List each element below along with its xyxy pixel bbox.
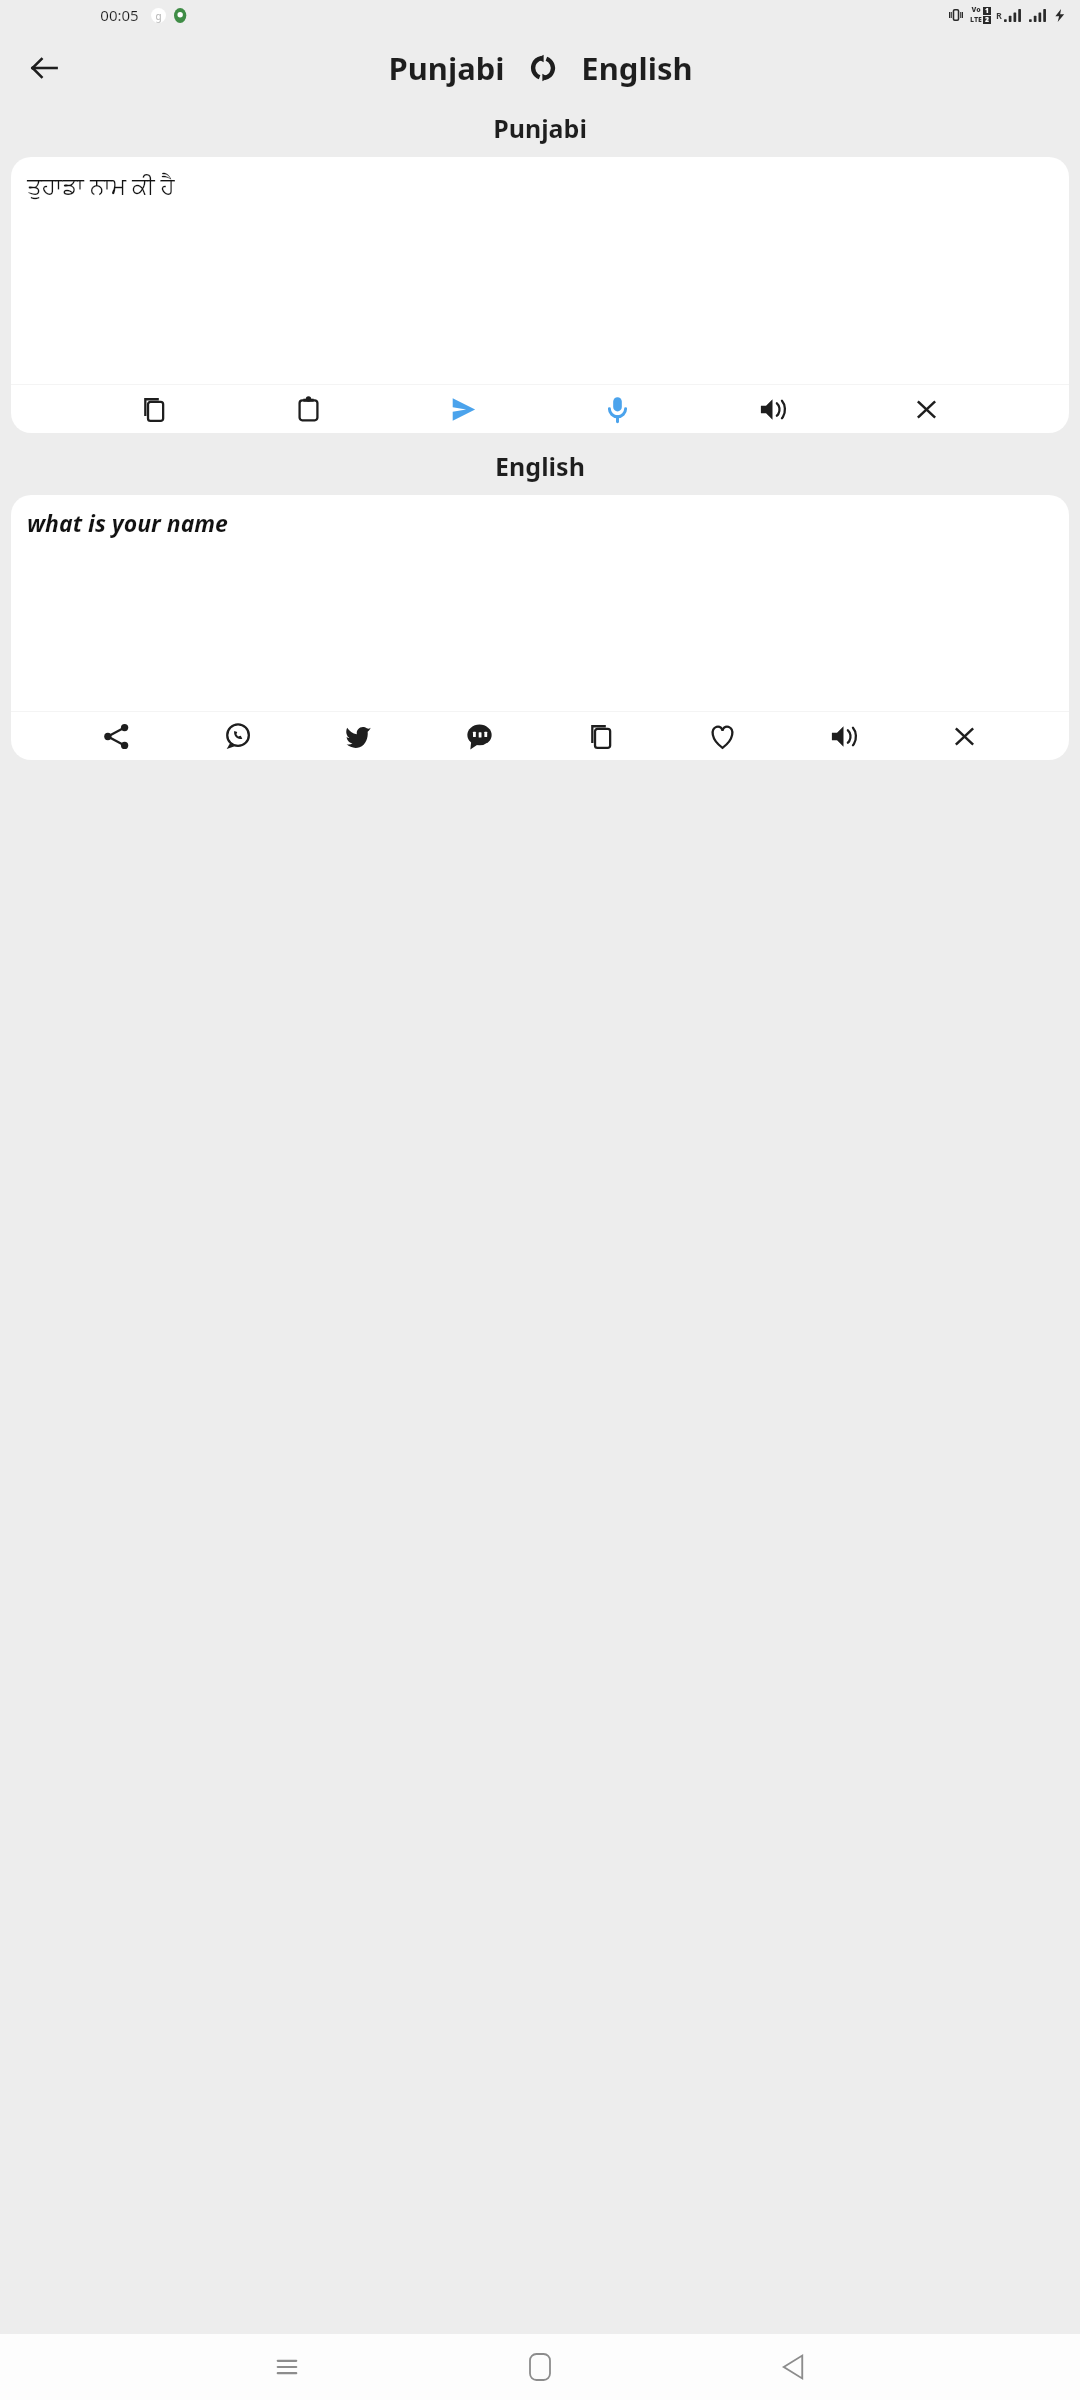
staticText: R: [996, 9, 1002, 21]
staticText: 2: [985, 16, 989, 24]
staticText: what is your name: [27, 507, 228, 538]
staticText: g: [155, 9, 162, 23]
button[interactable]: Clear: [904, 387, 948, 431]
button[interactable]: Punjabi: [384, 43, 509, 93]
button[interactable]: Back: [18, 42, 70, 94]
staticText: Punjabi: [493, 111, 587, 145]
staticText: 1: [985, 7, 989, 15]
staticText: English: [581, 47, 693, 89]
button[interactable]: WhatsApp: [215, 714, 259, 758]
button[interactable]: what is your name: [11, 495, 1069, 711]
staticText: 00:05: [100, 5, 139, 25]
button[interactable]: Back: [767, 2341, 819, 2393]
button[interactable]: Clear: [942, 714, 986, 758]
button[interactable]: Speak: [750, 387, 794, 431]
button[interactable]: Share: [94, 714, 138, 758]
button[interactable]: SMS: [457, 714, 501, 758]
button[interactable]: Translate: [441, 387, 485, 431]
button[interactable]: Voice input: [595, 387, 639, 431]
button[interactable]: Home: [514, 2341, 566, 2393]
staticText: Vo: [971, 5, 981, 15]
button[interactable]: Swap languages: [523, 48, 563, 88]
button[interactable]: ਤੁਹਾਡਾ ਨਾਮ ਕੀ ਹੈ: [11, 157, 1069, 384]
staticText: English: [495, 449, 585, 483]
button[interactable]: Copy: [132, 387, 176, 431]
button[interactable]: Copy: [579, 714, 623, 758]
button[interactable]: Speak: [821, 714, 865, 758]
button[interactable]: English: [577, 43, 697, 93]
staticText: ਤੁਹਾਡਾ ਨਾਮ ਕੀ ਹੈ: [27, 169, 175, 200]
button[interactable]: Recent apps: [261, 2341, 313, 2393]
button[interactable]: Favourite: [700, 714, 744, 758]
staticText: LTE: [970, 15, 982, 25]
button[interactable]: Paste: [286, 387, 330, 431]
button[interactable]: Twitter: [336, 714, 380, 758]
staticText: Punjabi: [388, 47, 505, 89]
